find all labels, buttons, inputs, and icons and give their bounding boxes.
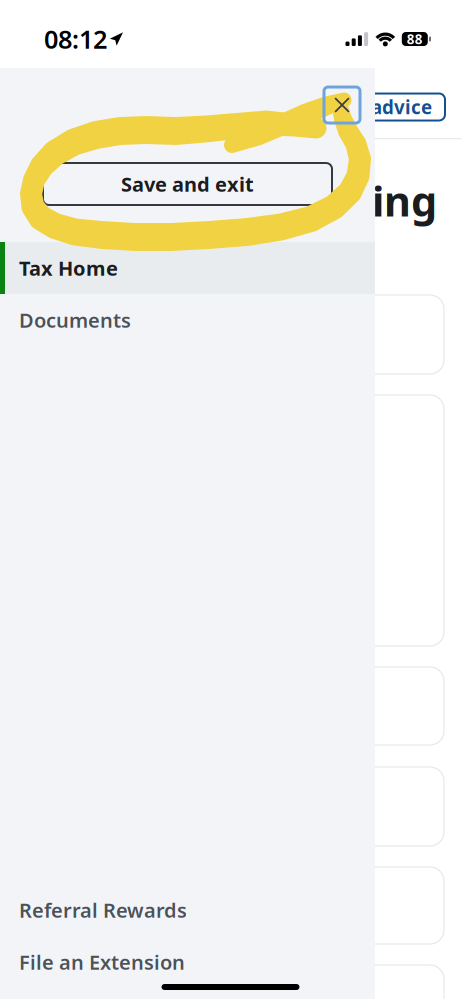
button[interactable]: Get tax advice [285, 93, 445, 120]
staticText: Documents [19, 307, 131, 333]
button[interactable]: File an Extension [0, 936, 375, 988]
staticText: File an Extension [19, 949, 185, 975]
button[interactable]: Documents [0, 294, 375, 346]
staticText: Referral Rewards [19, 897, 187, 923]
button[interactable]: Save and exit [43, 163, 332, 205]
staticText: Save and exit [121, 171, 254, 197]
staticText: Income and banking [13, 173, 437, 228]
staticText: Tax Home [19, 255, 118, 281]
button[interactable]: Close menu [324, 87, 360, 123]
staticText: 08:12 [44, 22, 107, 56]
staticText: Get tax advice [298, 95, 432, 119]
button[interactable]: Tax Home [0, 242, 375, 294]
staticText: 88 [407, 30, 423, 48]
button[interactable]: Referral Rewards [0, 884, 375, 936]
